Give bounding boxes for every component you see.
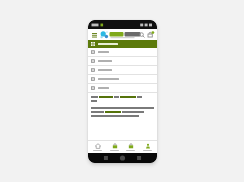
button[interactable]: Cart [123,143,138,151]
button[interactable] [88,66,157,74]
button[interactable] [88,48,157,56]
button[interactable]: Account [140,143,155,151]
button[interactable]: Home [90,143,105,151]
button[interactable] [88,75,157,83]
button[interactable] [88,40,157,48]
button[interactable] [88,57,157,65]
button[interactable]: Cart [146,30,155,39]
button[interactable]: Menu [90,31,98,39]
button[interactable] [88,84,157,92]
button[interactable]: Shop [107,143,122,151]
button[interactable]: Search [138,31,146,39]
